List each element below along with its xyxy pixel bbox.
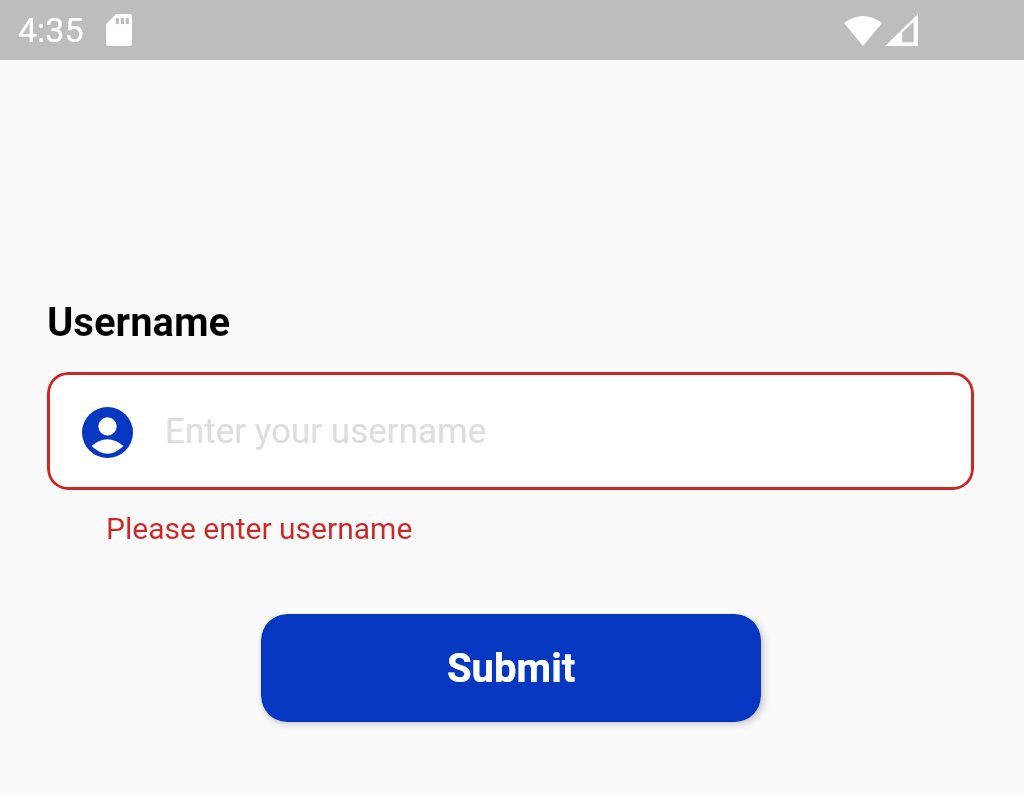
button[interactable]: Account: [47, 372, 974, 490]
staticText: Please enter username: [106, 511, 413, 546]
button[interactable]: Submit: [261, 614, 761, 722]
staticText: 4:35: [18, 10, 84, 50]
other: SD card: [106, 14, 132, 46]
other: Account: [82, 407, 133, 458]
other: Cellular signal: [885, 14, 918, 46]
other: Wi-Fi signal: [844, 14, 882, 46]
staticText: Submit: [447, 645, 576, 692]
staticText: Username: [47, 299, 231, 346]
staticText: Enter your username: [165, 411, 487, 452]
